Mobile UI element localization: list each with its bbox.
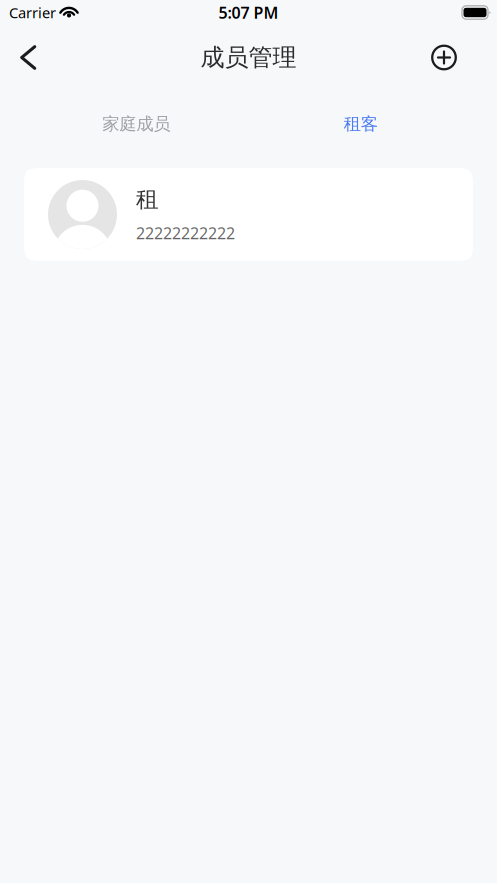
staticText: 5:07 PM: [218, 2, 278, 23]
staticText: 租: [136, 185, 159, 213]
staticText: Carrier: [9, 3, 56, 22]
button[interactable]: 家庭成员: [24, 104, 248, 144]
staticText: 家庭成员: [102, 113, 170, 135]
button[interactable]: Back: [6, 35, 50, 79]
staticText: 成员管理: [200, 43, 296, 72]
button[interactable]: Add member: [422, 35, 466, 79]
button[interactable]: 租: [24, 168, 473, 261]
button[interactable]: 租客: [248, 104, 473, 144]
staticText: 22222222222: [136, 222, 235, 243]
staticText: 租客: [344, 113, 378, 135]
